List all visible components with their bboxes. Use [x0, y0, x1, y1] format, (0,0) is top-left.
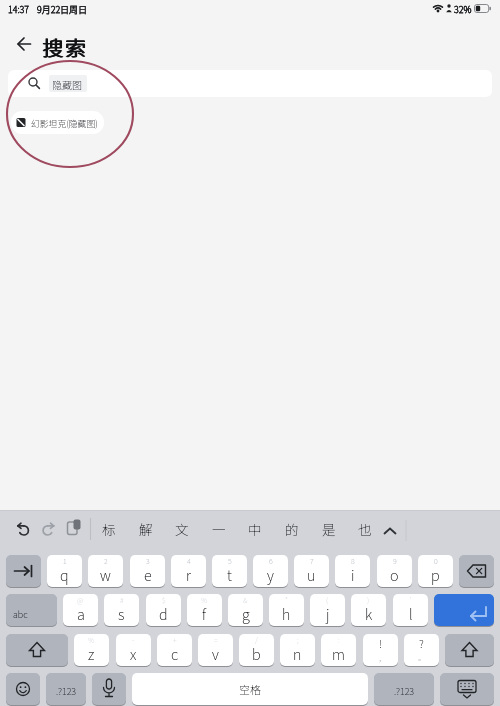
button[interactable]: + — [157, 634, 192, 666]
staticText: % — [88, 635, 95, 645]
button[interactable] — [12, 32, 36, 56]
staticText: 3 — [146, 556, 150, 566]
staticText: 的 — [285, 519, 299, 539]
button[interactable]: 一 — [201, 512, 237, 546]
button[interactable]: 1 — [47, 555, 82, 587]
staticText: 搜索 — [42, 32, 88, 62]
staticText: .?123 — [56, 685, 77, 698]
button[interactable]: / — [239, 634, 274, 666]
button[interactable]: 7 — [294, 555, 329, 587]
staticText: ; — [297, 635, 299, 645]
staticText: 9月22日周日 — [37, 3, 88, 16]
button[interactable]: 4 — [171, 555, 206, 587]
button[interactable]: 0 — [418, 555, 453, 587]
button[interactable]: 文 — [164, 512, 200, 546]
staticText: 4 — [187, 556, 191, 566]
button[interactable]: abc — [6, 594, 57, 626]
button[interactable]: 标 — [91, 512, 127, 546]
staticText: 是 — [322, 519, 336, 539]
button[interactable]: 9 — [377, 555, 412, 587]
button[interactable]: 空格 — [132, 673, 368, 705]
staticText: u — [307, 564, 316, 585]
button[interactable] — [434, 594, 494, 626]
staticText: = — [214, 635, 218, 645]
staticText: ! — [379, 635, 383, 651]
staticText: f — [202, 603, 207, 624]
staticText: 一 — [212, 519, 226, 539]
staticText: q — [60, 564, 69, 585]
button[interactable]: $ — [146, 594, 181, 626]
staticText: g — [242, 603, 250, 624]
staticText: j — [326, 603, 330, 624]
staticText: j — [326, 603, 330, 624]
button[interactable] — [459, 555, 494, 587]
button[interactable]: 隐藏图 — [8, 70, 492, 97]
staticText: 6 — [269, 556, 273, 566]
button[interactable]: ' — [393, 594, 428, 626]
staticText: y — [267, 564, 274, 585]
button[interactable] — [6, 673, 40, 705]
button[interactable]: = — [198, 634, 233, 666]
staticText: 1 — [63, 556, 67, 566]
button[interactable]: 6 — [253, 555, 288, 587]
staticText: 32% — [454, 3, 472, 16]
button[interactable]: 3 — [130, 555, 165, 587]
button[interactable]: # — [104, 594, 139, 626]
staticText: l — [409, 603, 413, 624]
button[interactable]: 5 — [212, 555, 247, 587]
button[interactable]: ) — [351, 594, 386, 626]
staticText: a — [77, 603, 85, 624]
staticText: 标 — [102, 519, 116, 539]
staticText: 14:37 — [8, 3, 29, 16]
button[interactable]: ? — [404, 634, 439, 666]
staticText: % — [201, 595, 208, 605]
staticText: abc — [13, 608, 28, 621]
staticText: 14:37 — [8, 3, 29, 16]
staticText: v — [212, 643, 219, 664]
button[interactable]: 是 — [311, 512, 347, 546]
button[interactable]: & — [228, 594, 263, 626]
button[interactable]: 幻影坦克(隐藏图) — [11, 111, 104, 134]
button[interactable] — [6, 555, 41, 587]
staticText: & — [243, 595, 248, 605]
staticText: 32% — [454, 3, 472, 16]
staticText: 空格 — [239, 681, 261, 697]
button[interactable]: .?123 — [374, 673, 434, 705]
staticText: 32% — [454, 3, 472, 16]
button[interactable] — [6, 634, 68, 666]
button[interactable] — [440, 673, 494, 705]
button[interactable]: * — [269, 594, 304, 626]
button[interactable]: 中 — [237, 512, 273, 546]
button[interactable]: 8 — [335, 555, 370, 587]
staticText: 9月22日周日 — [37, 3, 88, 16]
button[interactable]: : — [321, 634, 356, 666]
button[interactable]: 的 — [274, 512, 310, 546]
staticText: 中 — [248, 519, 262, 539]
button[interactable]: % — [187, 594, 222, 626]
button[interactable]: % — [74, 634, 109, 666]
staticText: t — [227, 564, 232, 585]
button[interactable]: 2 — [88, 555, 123, 587]
staticText: a — [77, 603, 85, 624]
staticText: 解 — [139, 519, 153, 539]
staticText: e — [144, 564, 152, 585]
button[interactable]: ( — [310, 594, 345, 626]
button[interactable]: - — [116, 634, 151, 666]
button[interactable]: ! — [363, 634, 398, 666]
staticText: 是 — [322, 519, 336, 539]
button[interactable]: ; — [280, 634, 315, 666]
staticText: k — [365, 603, 373, 624]
button[interactable] — [445, 634, 494, 666]
staticText: w — [100, 564, 111, 585]
button[interactable]: 解 — [128, 512, 164, 546]
staticText: 的 — [285, 519, 299, 539]
staticText: - — [132, 635, 135, 645]
button[interactable]: .?123 — [46, 673, 86, 705]
staticText: o — [390, 564, 399, 585]
button[interactable]: 也 — [347, 512, 383, 546]
staticText: i — [351, 564, 355, 585]
button[interactable] — [92, 673, 126, 705]
button[interactable]: @ — [63, 594, 98, 626]
staticText: z — [88, 643, 95, 664]
staticText: 解 — [139, 519, 153, 539]
